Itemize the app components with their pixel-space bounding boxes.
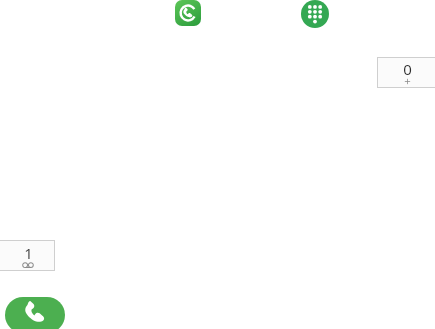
staticText: 0 [403, 59, 412, 79]
button[interactable]: Call [5, 297, 65, 329]
button[interactable]: Phone [175, 0, 201, 26]
button[interactable]: 0 [377, 57, 435, 88]
button[interactable]: Dialpad [301, 0, 329, 28]
button[interactable]: 1 [0, 240, 55, 271]
staticText: 1 [24, 243, 33, 263]
